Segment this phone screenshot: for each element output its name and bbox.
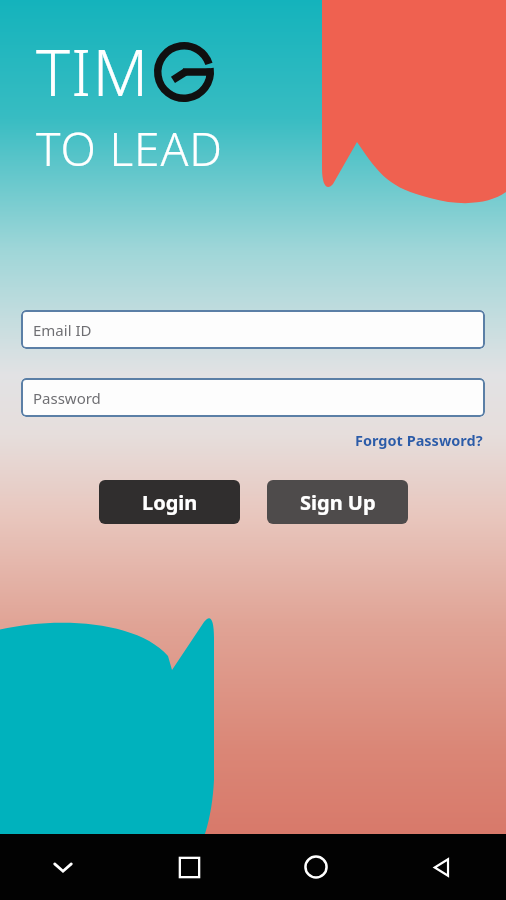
staticText: Email ID bbox=[33, 320, 92, 340]
button[interactable]: Password bbox=[21, 378, 485, 417]
staticText: Forgot Password? bbox=[355, 430, 483, 450]
button[interactable]: Sign Up bbox=[267, 480, 408, 524]
button[interactable]: Email ID bbox=[21, 310, 485, 349]
button[interactable]: Recent apps bbox=[126, 834, 252, 900]
staticText: TO LEAD bbox=[36, 117, 223, 180]
staticText: Sign Up bbox=[300, 489, 376, 516]
staticText: Password bbox=[33, 388, 101, 408]
button[interactable]: Login bbox=[99, 480, 240, 524]
button[interactable]: Back bbox=[379, 834, 506, 900]
button[interactable]: Forgot Password? bbox=[353, 428, 485, 452]
staticText: TIM bbox=[36, 28, 150, 115]
button[interactable]: Home bbox=[252, 834, 379, 900]
button[interactable]: Hide keyboard bbox=[0, 834, 126, 900]
staticText: Login bbox=[142, 489, 198, 516]
